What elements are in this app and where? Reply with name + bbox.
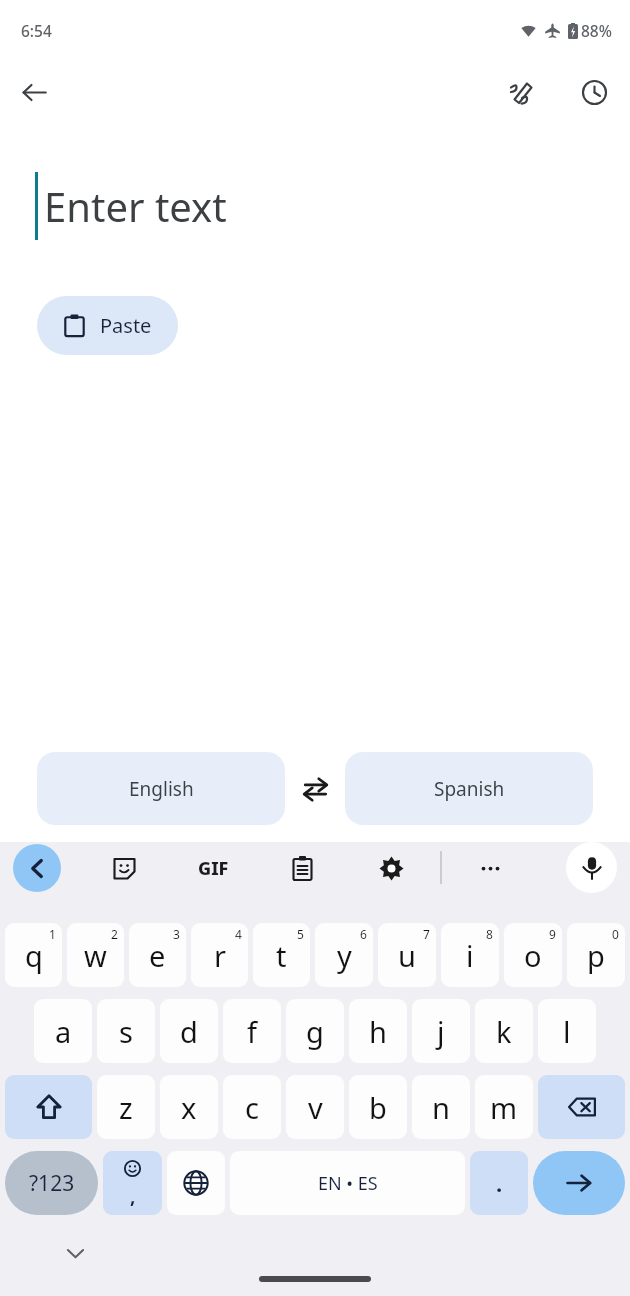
- staticText: 4: [235, 926, 242, 942]
- button[interactable]: Shift: [5, 1075, 92, 1139]
- staticText: .: [496, 1168, 503, 1198]
- button[interactable]: w: [67, 923, 124, 987]
- staticText: b: [369, 1088, 387, 1127]
- staticText: q: [25, 936, 43, 975]
- button[interactable]: c: [223, 1075, 281, 1139]
- staticText: g: [306, 1012, 324, 1051]
- button[interactable]: p: [567, 923, 625, 987]
- button[interactable]: l: [538, 999, 596, 1063]
- button[interactable]: Stickers: [102, 846, 146, 890]
- staticText: 7: [423, 926, 430, 942]
- button[interactable]: Emoji and comma: [103, 1151, 162, 1215]
- button[interactable]: Handwriting: [497, 68, 545, 116]
- button[interactable]: Back: [10, 68, 58, 116]
- staticText: y: [337, 936, 352, 975]
- button[interactable]: e: [129, 923, 186, 987]
- staticText: 5: [297, 926, 304, 942]
- button[interactable]: History: [570, 68, 618, 116]
- staticText: v: [308, 1088, 323, 1127]
- button[interactable]: q: [5, 923, 62, 987]
- button[interactable]: f: [223, 999, 281, 1063]
- button[interactable]: x: [160, 1075, 218, 1139]
- button[interactable]: ?123: [5, 1151, 98, 1215]
- staticText: u: [398, 936, 416, 975]
- staticText: x: [181, 1088, 197, 1127]
- staticText: 88%: [581, 20, 612, 41]
- staticText: ,: [130, 1183, 136, 1209]
- staticText: 6:54: [21, 20, 52, 41]
- staticText: n: [432, 1088, 450, 1127]
- button[interactable]: u: [378, 923, 436, 987]
- button[interactable]: Paste: [37, 296, 178, 355]
- button[interactable]: Enter: [533, 1151, 625, 1215]
- staticText: l: [563, 1012, 571, 1051]
- button[interactable]: z: [97, 1075, 155, 1139]
- button[interactable]: Change language: [167, 1151, 225, 1215]
- button[interactable]: Settings: [369, 846, 413, 890]
- button[interactable]: y: [315, 923, 373, 987]
- staticText: GIF: [198, 856, 229, 881]
- staticText: s: [119, 1012, 133, 1051]
- staticText: z: [119, 1088, 133, 1127]
- staticText: 1: [49, 926, 56, 942]
- button[interactable]: h: [349, 999, 407, 1063]
- staticText: e: [149, 936, 166, 975]
- button[interactable]: i: [441, 923, 499, 987]
- button[interactable]: r: [191, 923, 248, 987]
- button[interactable]: o: [504, 923, 562, 987]
- staticText: Enter text: [44, 179, 227, 233]
- staticText: h: [369, 1012, 387, 1051]
- button[interactable]: Voice input: [566, 842, 617, 893]
- button[interactable]: Clipboard: [280, 846, 324, 890]
- button[interactable]: d: [160, 999, 218, 1063]
- button[interactable]: Spanish: [345, 752, 593, 825]
- button[interactable]: Swap languages: [285, 759, 345, 819]
- button[interactable]: n: [412, 1075, 470, 1139]
- staticText: ?123: [29, 1169, 75, 1198]
- button[interactable]: a: [34, 999, 92, 1063]
- staticText: 6: [360, 926, 367, 942]
- button[interactable]: More options: [468, 846, 512, 890]
- staticText: 3: [173, 926, 180, 942]
- staticText: 9: [549, 926, 556, 942]
- button[interactable]: g: [286, 999, 344, 1063]
- staticText: j: [437, 1012, 445, 1051]
- button[interactable]: j: [412, 999, 470, 1063]
- staticText: m: [490, 1088, 518, 1127]
- staticText: o: [524, 936, 542, 975]
- button[interactable]: EN • ES: [230, 1151, 465, 1215]
- button[interactable]: Enter text: [0, 172, 630, 240]
- button[interactable]: m: [475, 1075, 533, 1139]
- staticText: p: [587, 936, 605, 975]
- staticText: EN • ES: [318, 1171, 378, 1196]
- staticText: Paste: [100, 312, 152, 339]
- button[interactable]: b: [349, 1075, 407, 1139]
- staticText: Spanish: [434, 776, 505, 802]
- staticText: w: [84, 936, 107, 975]
- staticText: f: [247, 1012, 257, 1051]
- staticText: t: [276, 936, 287, 975]
- button[interactable]: Backspace: [538, 1075, 625, 1139]
- staticText: d: [180, 1012, 198, 1051]
- button[interactable]: k: [475, 999, 533, 1063]
- staticText: i: [466, 936, 474, 975]
- staticText: 0: [612, 926, 619, 942]
- staticText: 2: [111, 926, 118, 942]
- staticText: k: [496, 1012, 512, 1051]
- staticText: r: [214, 936, 226, 975]
- button[interactable]: s: [97, 999, 155, 1063]
- button[interactable]: Previous: [13, 844, 61, 892]
- staticText: English: [129, 776, 194, 802]
- button[interactable]: v: [286, 1075, 344, 1139]
- staticText: c: [245, 1088, 259, 1127]
- button[interactable]: GIF: [191, 846, 235, 890]
- staticText: 8: [486, 926, 493, 942]
- button[interactable]: t: [253, 923, 310, 987]
- staticText: a: [55, 1012, 72, 1051]
- button[interactable]: Hide keyboard: [55, 1233, 95, 1273]
- button[interactable]: .: [470, 1151, 528, 1215]
- button[interactable]: English: [37, 752, 285, 825]
